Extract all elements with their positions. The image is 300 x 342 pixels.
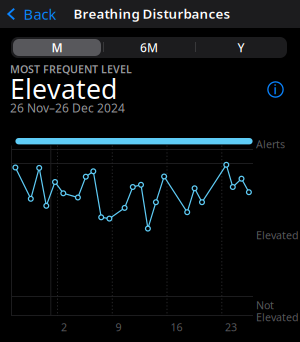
staticText: Not: [256, 298, 274, 312]
staticText: 2: [61, 320, 67, 334]
staticText: Elevated: [256, 228, 299, 242]
staticText: MOST FREQUENT LEVEL: [10, 62, 132, 76]
staticText: 6M: [140, 39, 158, 55]
button[interactable]: About Breathing Disturbances: [266, 80, 285, 99]
staticText: Y: [237, 39, 244, 55]
staticText: i: [273, 80, 277, 98]
staticText: 16: [170, 320, 182, 334]
button[interactable]: Back: [0, 0, 62, 28]
staticText: 23: [225, 320, 237, 334]
staticText: 26 Nov–26 Dec 2024: [10, 100, 125, 116]
staticText: Back: [23, 4, 56, 24]
staticText: Elevated: [10, 71, 117, 106]
button[interactable]: Y: [195, 37, 287, 58]
staticText: Breathing Disturbances: [73, 5, 230, 22]
staticText: M: [51, 39, 62, 55]
button[interactable]: 6M: [103, 37, 195, 58]
staticText: Alerts: [256, 137, 285, 151]
button[interactable]: M: [11, 37, 103, 58]
staticText: Elevated: [256, 310, 299, 324]
staticText: 9: [115, 320, 121, 334]
